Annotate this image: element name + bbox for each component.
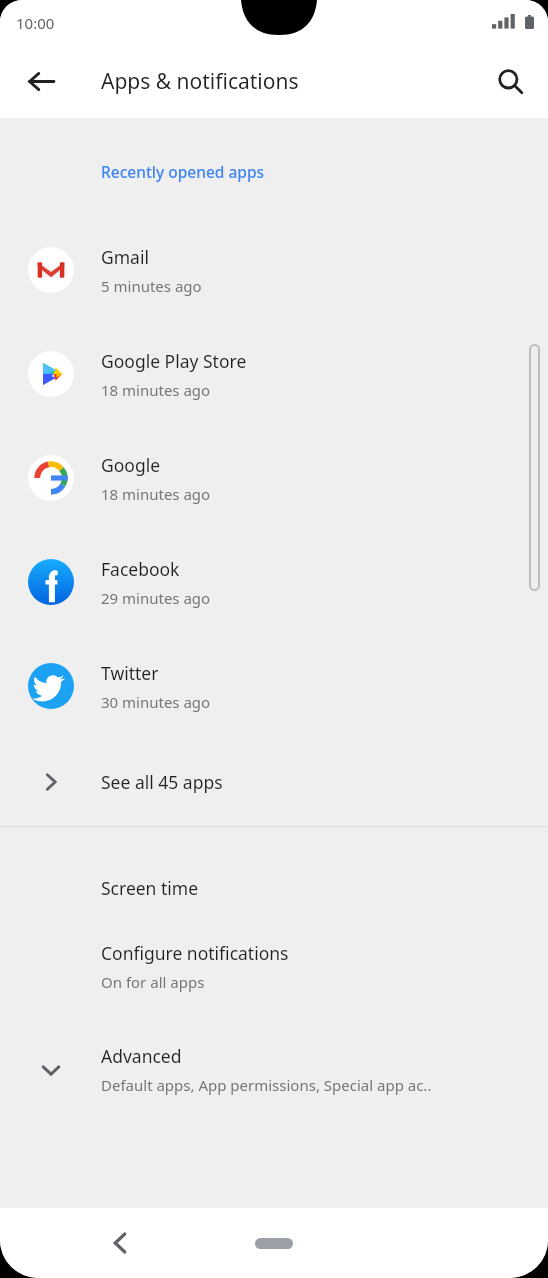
staticText: Apps & notifications [101,67,299,96]
button[interactable]: Back [92,1215,148,1271]
staticText: 29 minutes ago [101,588,211,608]
button[interactable]: Facebook [0,530,548,634]
button[interactable]: Screen time [0,859,548,917]
staticText: On for all apps [101,972,205,992]
staticText: Screen time [101,876,199,900]
staticText: Configure notifications [101,941,289,965]
button[interactable]: See all 45 apps [0,738,548,826]
button[interactable]: Google Play Store [0,322,548,426]
button[interactable]: Home [246,1228,302,1258]
staticText: 18 minutes ago [101,380,211,400]
button[interactable]: Search [482,53,538,109]
staticText: Advanced [101,1044,182,1068]
staticText: See all 45 apps [101,770,223,794]
staticText: 18 minutes ago [101,484,211,504]
staticText: Google Play Store [101,349,247,373]
staticText: 30 minutes ago [101,692,211,712]
staticText: Facebook [101,557,180,581]
staticText: Recently opened apps [101,161,265,182]
button[interactable]: Twitter [0,634,548,738]
staticText: 10:00 [16,13,55,33]
staticText: Default apps, App permissions, Special a… [101,1075,432,1095]
button[interactable]: Advanced [0,1044,548,1095]
button[interactable]: Configure notifications [0,935,548,998]
staticText: 5 minutes ago [101,276,202,296]
button[interactable]: Back [13,53,69,109]
button[interactable]: Gmail [0,218,548,322]
staticText: Google [101,453,161,477]
staticText: Twitter [101,661,159,685]
button[interactable]: Google [0,426,548,530]
staticText: Gmail [101,245,149,269]
